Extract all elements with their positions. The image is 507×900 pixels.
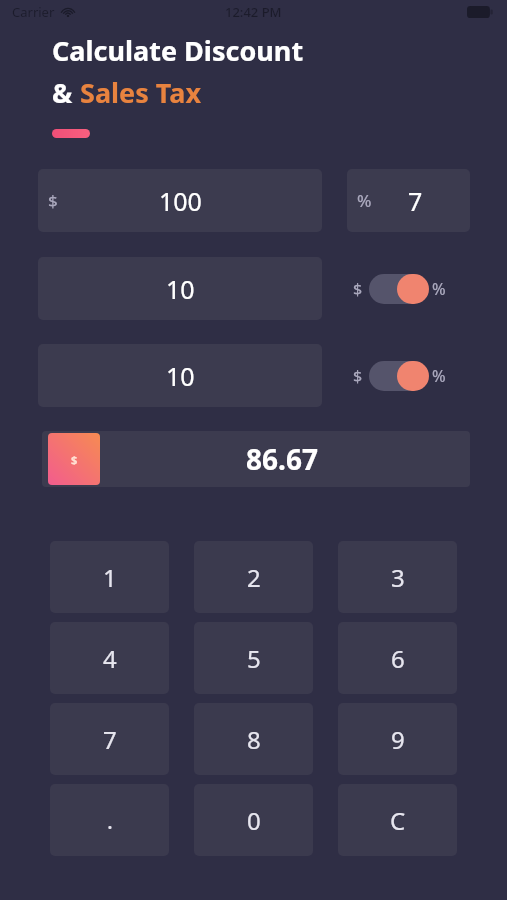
staticText: 12:42 PM (225, 3, 282, 21)
button[interactable]: Currency (48, 433, 100, 485)
staticText: 100 (159, 184, 202, 218)
button[interactable]: 4 (50, 622, 169, 694)
staticText: 0 (247, 804, 261, 837)
button[interactable]: Toggle dollar or percent (369, 274, 423, 304)
button[interactable]: 3 (338, 541, 457, 613)
button[interactable]: . (50, 784, 169, 856)
button[interactable]: $ (38, 169, 322, 232)
staticText: & (52, 74, 80, 111)
staticText: 6 (391, 642, 405, 675)
staticText: 10 (166, 359, 195, 393)
staticText: 7 (103, 723, 117, 756)
button[interactable]: 10 (38, 257, 322, 320)
staticText: $ (353, 365, 363, 387)
button[interactable]: Toggle dollar or percent (369, 361, 423, 391)
staticText: 3 (391, 561, 405, 594)
button[interactable]: 10 (38, 344, 322, 407)
staticText: Calculate Discount (52, 32, 304, 69)
button[interactable]: 8 (194, 703, 313, 775)
button[interactable]: 2 (194, 541, 313, 613)
staticText: 1 (103, 561, 117, 594)
button[interactable]: C (338, 784, 457, 856)
button[interactable]: 9 (338, 703, 457, 775)
button[interactable]: 1 (50, 541, 169, 613)
staticText: 5 (247, 642, 261, 675)
button[interactable]: % (347, 169, 470, 232)
staticText: $ (353, 278, 363, 300)
button[interactable]: 6 (338, 622, 457, 694)
button[interactable]: 0 (194, 784, 313, 856)
staticText: % (357, 189, 372, 212)
staticText: C (390, 804, 406, 837)
button[interactable]: 7 (50, 703, 169, 775)
staticText: $ (71, 452, 78, 467)
staticText: % (432, 278, 446, 300)
button[interactable]: 5 (194, 622, 313, 694)
staticText: 10 (166, 272, 195, 306)
staticText: 2 (247, 561, 261, 594)
staticText: 8 (247, 723, 261, 756)
staticText: Sales Tax (80, 74, 201, 111)
staticText: Carrier (12, 3, 55, 21)
staticText: % (432, 365, 446, 387)
staticText: 9 (391, 723, 405, 756)
staticText: 86.67 (246, 440, 318, 478)
staticText: 7 (408, 184, 423, 218)
staticText: $ (48, 189, 58, 212)
staticText: . (107, 805, 113, 835)
staticText: 4 (103, 642, 117, 675)
